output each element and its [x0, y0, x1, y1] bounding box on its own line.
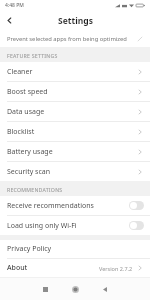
button[interactable]: Recents: [34, 278, 56, 300]
staticText: Security scan: [7, 167, 51, 177]
button[interactable]: Receive recommendations: [0, 196, 150, 215]
button[interactable]: Back: [94, 278, 116, 300]
button[interactable]: Edit: [135, 34, 145, 44]
staticText: Boost speed: [7, 87, 48, 97]
staticText: Version 2.7.2: [99, 265, 133, 272]
button[interactable]: Battery usage: [0, 142, 150, 161]
button[interactable]: About: [0, 259, 150, 277]
staticText: Blocklist: [7, 127, 35, 137]
staticText: 4:48 PM: [5, 2, 24, 9]
staticText: About: [7, 263, 28, 273]
staticText: Receive recommendations: [7, 201, 94, 211]
button[interactable]: Load using only Wi-Fi: [0, 216, 150, 235]
staticText: Battery usage: [7, 147, 53, 157]
staticText: Privacy Policy: [7, 244, 52, 254]
button[interactable]: Prevent selected apps from being optimiz…: [0, 30, 150, 47]
button[interactable]: Security scan: [0, 162, 150, 181]
staticText: Cleaner: [7, 67, 33, 77]
button[interactable]: Privacy Policy: [0, 240, 150, 258]
button[interactable]: Home: [64, 278, 86, 300]
staticText: Prevent selected apps from being optimiz…: [7, 35, 127, 43]
staticText: Load using only Wi-Fi: [7, 221, 77, 231]
staticText: FEATURE SETTINGS: [7, 52, 58, 59]
staticText: Settings: [58, 15, 93, 27]
button[interactable]: Cleaner: [0, 62, 150, 81]
button[interactable]: Blocklist: [0, 122, 150, 141]
staticText: Data usage: [7, 107, 45, 117]
button[interactable]: Boost speed: [0, 82, 150, 101]
staticText: RECOMMENDATIONS: [7, 186, 63, 193]
button[interactable]: Data usage: [0, 102, 150, 121]
button[interactable]: Back: [0, 11, 19, 30]
